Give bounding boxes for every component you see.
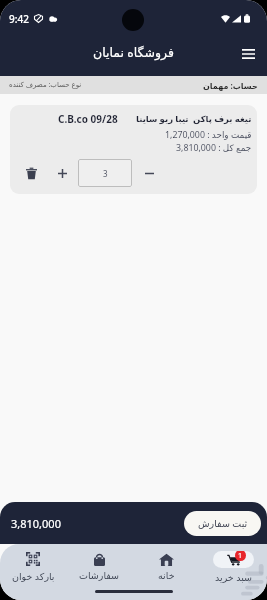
button[interactable]: خانه [133, 544, 200, 590]
staticText: حساب: مهمان [203, 80, 258, 91]
staticText: C.B.co 09/28 [58, 112, 118, 126]
button[interactable]: 1 [200, 544, 267, 590]
button[interactable]: Increase quantity [51, 162, 73, 184]
staticText: بارکد خوان [12, 570, 55, 583]
staticText: قیمت واحد : 1,270,000 [165, 129, 252, 141]
button[interactable]: ثبت سفارش [184, 511, 261, 536]
staticText: 3,810,000 [11, 516, 61, 531]
button[interactable]: Menu [235, 41, 261, 67]
button[interactable]: سفارشات [66, 544, 133, 590]
staticText: 1 [238, 551, 243, 561]
staticText: سبد خرید [215, 571, 253, 584]
staticText: نوع حساب: مصرف کننده [9, 80, 82, 90]
button[interactable]: C.B.co 09/28 [10, 105, 257, 194]
staticText: جمع کل : 3,810,000 [176, 142, 252, 154]
staticText: 9:42 [9, 12, 29, 26]
button[interactable]: Delete item [19, 161, 43, 185]
button[interactable]: 3 [78, 159, 132, 187]
staticText: تیغه برف پاکن تیبا ریو ساینا [136, 113, 252, 125]
staticText: خانه [158, 570, 175, 581]
staticText: ثبت سفارش [198, 517, 248, 530]
staticText: فروشگاه نمایان [93, 44, 174, 61]
button[interactable]: Decrease quantity [138, 162, 160, 184]
button[interactable]: بارکد خوان [0, 544, 66, 590]
staticText: سفارشات [79, 570, 120, 581]
staticText: 3 [103, 168, 108, 179]
